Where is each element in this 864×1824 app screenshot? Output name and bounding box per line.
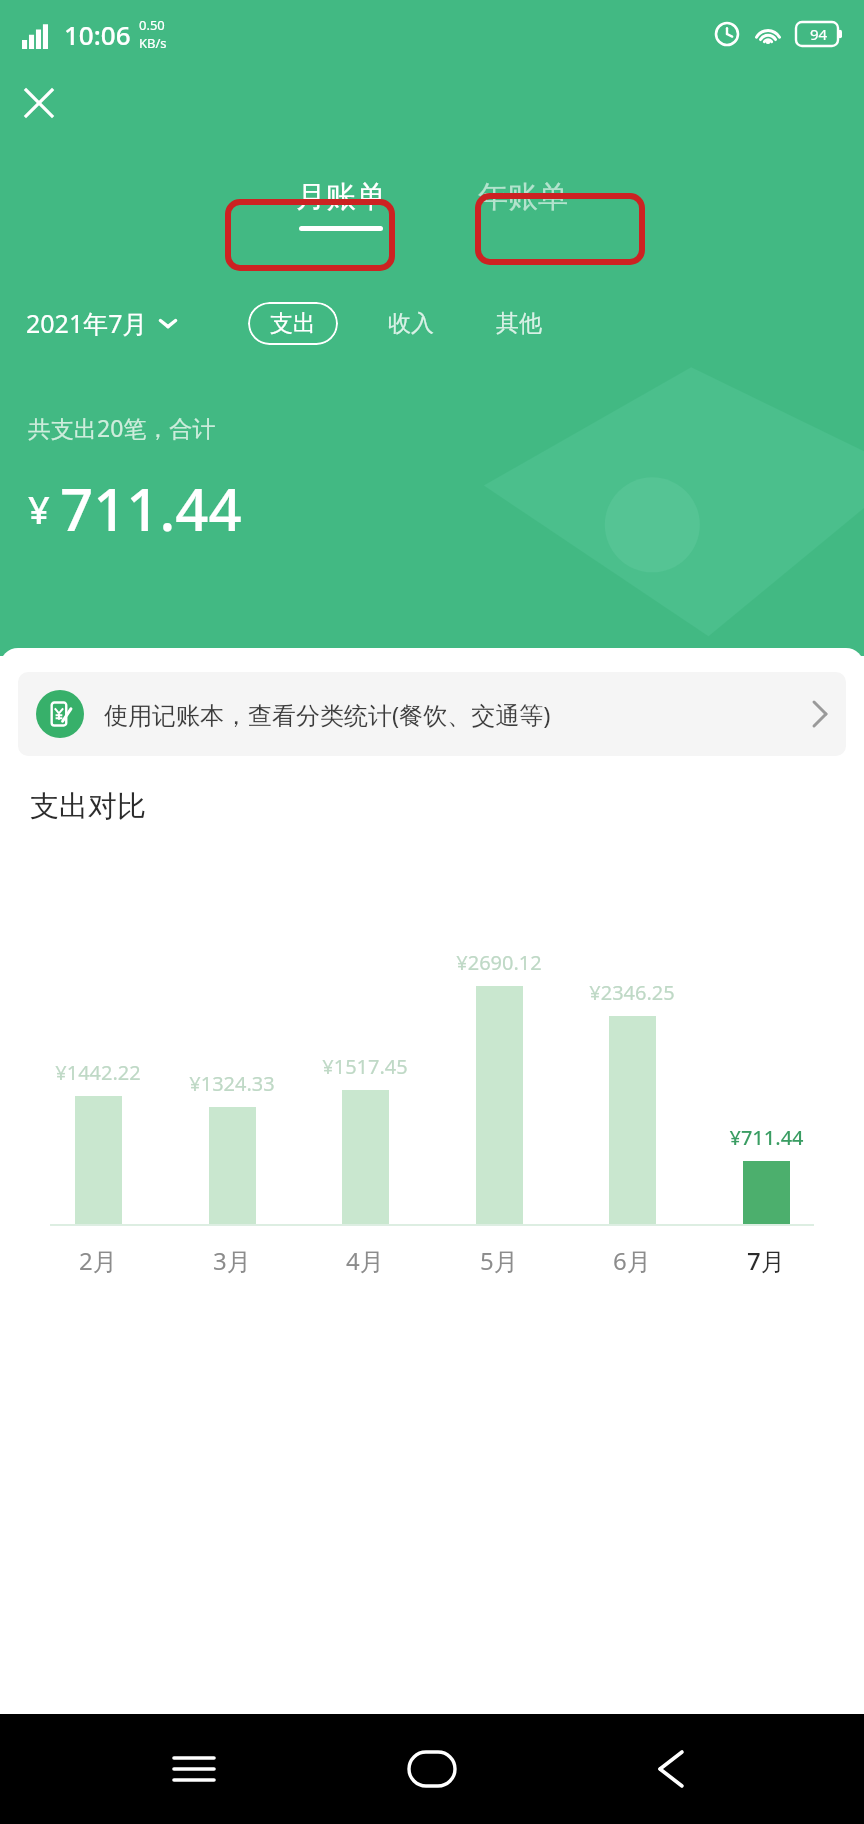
button[interactable]: 支出 <box>248 302 338 345</box>
staticText: 支出 <box>270 309 316 338</box>
staticText: ¥1324.33 <box>189 1070 275 1097</box>
staticText: 2021年7月 <box>26 306 148 340</box>
staticText: 共支出20笔，合计 <box>28 412 216 443</box>
button[interactable]: Close <box>10 74 68 132</box>
button[interactable]: Recents <box>149 1724 239 1814</box>
button[interactable]: 年账单 <box>460 172 586 237</box>
staticText: KB/s <box>139 34 167 52</box>
staticText: 月账单 <box>296 178 386 216</box>
staticText: ¥2346.25 <box>589 979 675 1006</box>
staticText: 收入 <box>388 309 434 338</box>
staticText: 年账单 <box>478 178 568 216</box>
button[interactable]: 收入 <box>382 301 440 346</box>
button[interactable]: Back <box>626 1724 716 1814</box>
staticText: ¥ <box>28 483 50 535</box>
button[interactable]: Home <box>387 1724 477 1814</box>
button[interactable]: 其他 <box>490 301 548 346</box>
staticText: 6月 <box>613 1244 651 1277</box>
button[interactable]: 2021年7月 <box>26 298 178 348</box>
staticText: ¥1517.45 <box>322 1053 408 1080</box>
staticText: 10:06 <box>64 17 131 52</box>
staticText: 0.50 <box>139 16 165 34</box>
staticText: ¥1442.22 <box>55 1059 141 1086</box>
staticText: 2月 <box>79 1244 117 1277</box>
staticText: 4月 <box>346 1244 384 1277</box>
button[interactable]: 月账单 <box>278 172 404 237</box>
staticText: 3月 <box>213 1244 251 1277</box>
staticText: 使用记账本，查看分类统计(餐饮、交通等) <box>104 698 800 731</box>
staticText: 其他 <box>496 309 542 338</box>
staticText: 支出对比 <box>30 788 146 825</box>
staticText: 94 <box>810 24 828 44</box>
staticText: ¥711.44 <box>729 1124 804 1151</box>
staticText: ¥2690.12 <box>456 949 542 976</box>
staticText: 711.44 <box>60 469 242 548</box>
button[interactable]: 使用记账本，查看分类统计(餐饮、交通等) <box>18 672 846 756</box>
staticText: 5月 <box>480 1244 518 1277</box>
staticText: 7月 <box>747 1244 785 1277</box>
